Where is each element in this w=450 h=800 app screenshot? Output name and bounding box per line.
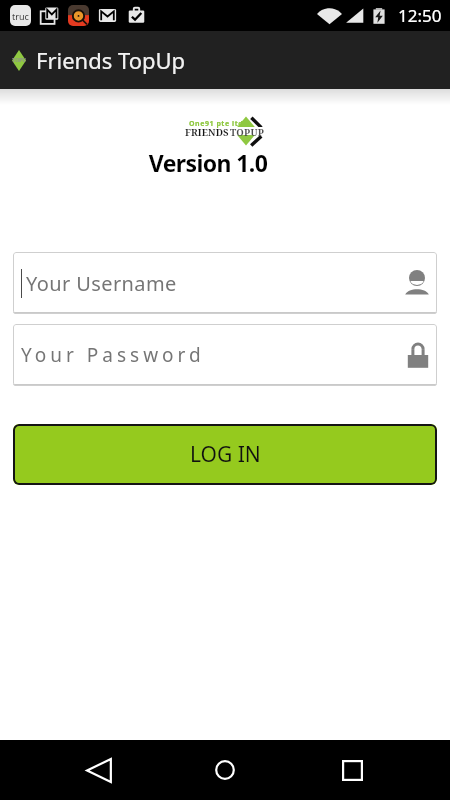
staticText: Version 1.0 [0, 147, 433, 178]
staticText: FRIENDS [185, 126, 229, 139]
button[interactable]: Home [197, 742, 253, 798]
button[interactable]: Recents [324, 742, 380, 798]
staticText: Friends TopUp [36, 45, 186, 75]
staticText: TOPUP [230, 126, 265, 139]
staticText: TOPUP [12, 57, 26, 64]
button[interactable]: Back [71, 742, 127, 798]
staticText: LOG IN [190, 440, 261, 469]
staticText: One91 pte ltd [189, 119, 244, 129]
button[interactable]: Your Username [13, 252, 437, 314]
staticText: Your Password [21, 342, 406, 368]
staticText: Your Username [26, 270, 404, 297]
staticText: 12:50 [398, 4, 442, 27]
staticText: truc [12, 10, 29, 22]
button[interactable]: LOG IN [13, 424, 437, 485]
button[interactable]: Your Password [13, 324, 437, 386]
